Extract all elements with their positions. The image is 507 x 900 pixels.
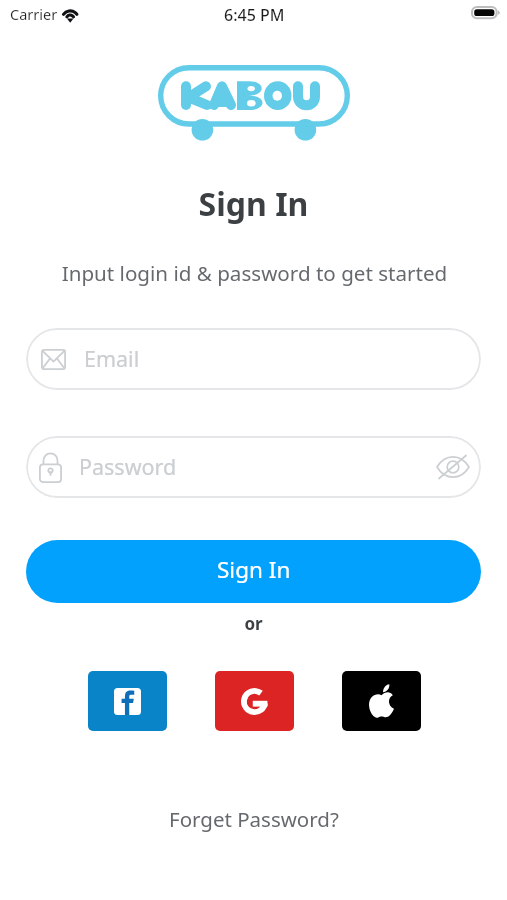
button[interactable]: Sign in with Google bbox=[215, 671, 294, 731]
staticText: Email bbox=[84, 344, 140, 373]
button[interactable]: Sign In bbox=[26, 540, 481, 603]
button[interactable]: Sign in with Facebook bbox=[88, 671, 167, 731]
staticText: Password bbox=[79, 452, 177, 481]
staticText: or bbox=[0, 612, 507, 635]
button[interactable]: Password bbox=[26, 436, 481, 498]
button[interactable]: Email bbox=[26, 328, 481, 390]
button[interactable]: Sign in with Apple bbox=[342, 671, 421, 731]
staticText: Input login id & password to get started bbox=[1, 259, 507, 287]
button[interactable]: Forget Password? bbox=[159, 800, 349, 838]
staticText: Sign In bbox=[217, 554, 291, 585]
staticText: Carrier bbox=[10, 4, 58, 24]
button[interactable]: Show password bbox=[434, 452, 472, 482]
staticText: Forget Password? bbox=[169, 805, 339, 833]
staticText: Sign In bbox=[0, 182, 507, 226]
staticText: 6:45 PM bbox=[224, 4, 285, 26]
